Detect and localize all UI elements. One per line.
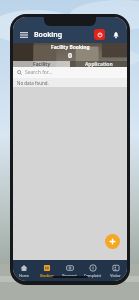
button[interactable]: Home (13, 260, 35, 281)
button[interactable]: Visitor (104, 260, 127, 281)
button[interactable]: Booking (35, 260, 58, 281)
button[interactable]: Search for... (17, 67, 123, 78)
staticText: Application (85, 61, 113, 67)
staticText: 0 (68, 51, 73, 61)
button[interactable]: Payment (58, 260, 81, 281)
staticText: Booking (34, 30, 63, 40)
button[interactable]: Emergency (94, 29, 105, 40)
button[interactable]: Application (70, 61, 127, 67)
button[interactable]: Notifications (110, 29, 122, 41)
staticText: Search for... (25, 69, 53, 76)
staticText: No data found. (17, 80, 49, 86)
button[interactable]: Complaint (81, 260, 104, 281)
button[interactable]: Add booking (105, 234, 120, 249)
button[interactable]: Facility (13, 61, 70, 67)
staticText: Home (19, 273, 29, 278)
button[interactable]: Menu (18, 29, 30, 41)
staticText: Facility Booking (51, 44, 90, 51)
staticText: Booking (40, 273, 54, 278)
staticText: Complaint (84, 273, 101, 278)
staticText: Facility (33, 61, 51, 67)
staticText: Visitor (110, 273, 121, 278)
staticText: Payment (62, 273, 77, 278)
